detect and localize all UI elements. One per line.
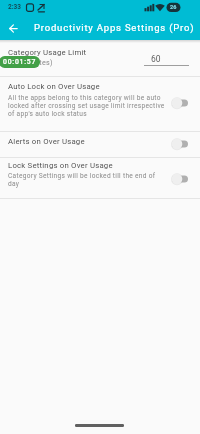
staticText: Alerts on Over Usage	[8, 137, 85, 146]
staticText: 2:33	[8, 3, 22, 11]
staticText: All the apps belong to this category wil…	[8, 94, 165, 118]
staticText: (in minutes)	[11, 58, 53, 66]
staticText: Category Usage Limit	[8, 48, 87, 57]
staticText: 26	[170, 4, 177, 10]
button[interactable]: Category Usage Limit	[0, 40, 200, 76]
staticText: Productivity Apps Settings (Pro)	[34, 22, 195, 33]
button[interactable]: Alerts on Over Usage	[0, 131, 200, 157]
button[interactable]: Lock Settings on Over Usage	[0, 158, 200, 199]
staticText: Category Settings will be locked till th…	[8, 172, 156, 188]
staticText: 00:01:57	[3, 58, 37, 66]
button[interactable]	[5, 20, 22, 37]
button[interactable]	[169, 137, 189, 151]
staticText: Lock Settings on Over Usage	[8, 161, 113, 170]
staticText: 60	[151, 54, 161, 64]
staticText: Auto Lock on Over Usage	[8, 82, 100, 91]
button[interactable]	[169, 96, 189, 110]
button[interactable]: Auto Lock on Over Usage	[0, 76, 200, 131]
button[interactable]	[169, 172, 189, 186]
